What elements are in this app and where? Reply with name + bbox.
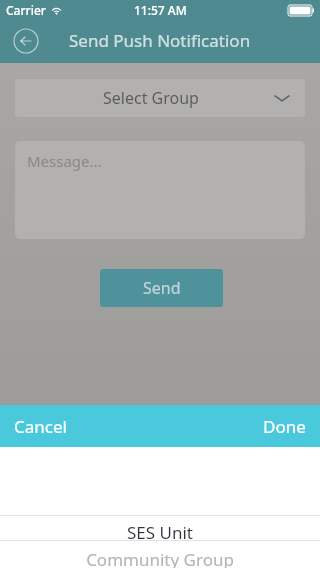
button[interactable]: SES Unit xyxy=(0,521,320,544)
button[interactable]: Message... xyxy=(15,141,305,239)
staticText: Select Group xyxy=(15,87,287,109)
button[interactable]: Select Group xyxy=(15,79,305,117)
button[interactable]: Cancel xyxy=(4,407,77,446)
staticText: Send xyxy=(143,277,181,299)
button[interactable]: Community Group xyxy=(0,548,320,568)
button[interactable]: Done xyxy=(253,407,316,446)
button[interactable]: Back xyxy=(10,25,42,57)
staticText: Message... xyxy=(27,151,102,171)
staticText: 11:57 AM xyxy=(134,2,187,18)
staticText: Carrier xyxy=(6,2,46,18)
staticText: Cancel xyxy=(14,415,67,438)
staticText: Done xyxy=(263,415,306,438)
staticText: Send Push Notification xyxy=(69,29,251,52)
button[interactable]: Send xyxy=(100,269,223,307)
